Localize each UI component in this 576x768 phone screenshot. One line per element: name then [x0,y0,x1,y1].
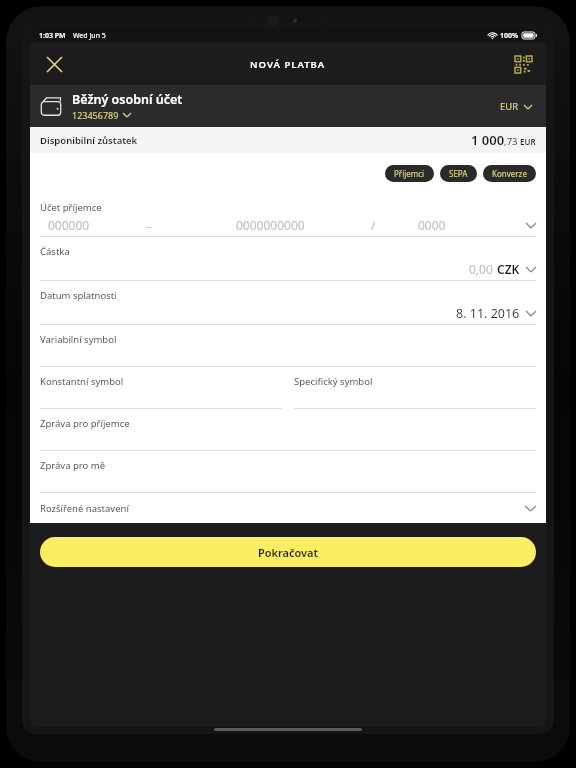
button[interactable]: Běžný osobní účet [30,85,546,127]
button[interactable]: Variabilní symbol [30,325,546,367]
staticText: Datum splatnosti [40,289,117,302]
staticText: 123456789 [72,109,119,121]
button[interactable]: Scan QR code [507,48,539,80]
staticText: / [371,218,376,233]
staticText: Zpráva pro příjemce [40,417,130,430]
staticText: CZK [497,261,520,277]
staticText: SEPA [449,168,468,179]
staticText: Zpráva pro mě [40,459,105,472]
staticText: Konstantní symbol [40,375,124,388]
staticText: NOVÁ PLATBA [250,58,326,71]
staticText: Běžný osobní účet [72,91,183,108]
staticText: EUR [500,100,519,113]
button[interactable]: Datum splatnosti [30,281,546,325]
staticText: 1:03 PM [39,31,66,41]
staticText: Konverze [492,168,527,179]
button[interactable]: Zpráva pro mě [30,451,546,493]
button[interactable]: Pokračovat [40,537,536,567]
staticText: Pokračovat [258,545,319,560]
button[interactable]: Zpráva pro příjemce [30,409,546,451]
staticText: Příjemci [394,168,425,179]
button[interactable]: Konstantní symbol [30,367,288,409]
staticText: Rozšířené nastavení [40,502,129,515]
staticText: Wed Jun 5 [73,31,106,41]
button[interactable]: SEPA [440,165,477,182]
staticText: 000000 [48,217,90,233]
staticText: 8. 11. 2016 [456,305,520,322]
button[interactable]: Specifický symbol [288,367,546,409]
staticText: 0,00 [469,261,493,277]
staticText: Účet příjemce [40,201,102,214]
staticText: Disponibilní zůstatek [40,134,138,147]
staticText: 0000 [418,217,446,233]
button[interactable]: Příjemci [385,165,434,182]
button[interactable]: EUR [496,96,536,117]
staticText: Variabilní symbol [40,333,117,346]
staticText: – [146,218,152,233]
staticText: 0000000000 [236,217,305,233]
button[interactable]: Účet příjemce [30,193,546,237]
button[interactable]: Konverze [483,165,536,182]
staticText: 1 000,73 EUR [471,131,536,149]
staticText: Částka [40,245,70,258]
button[interactable]: Rozšířené nastavení [30,493,546,523]
button[interactable]: Částka [30,237,546,281]
button[interactable]: Close [37,47,71,81]
staticText: 100% [500,31,519,41]
staticText: Specifický symbol [294,375,373,388]
